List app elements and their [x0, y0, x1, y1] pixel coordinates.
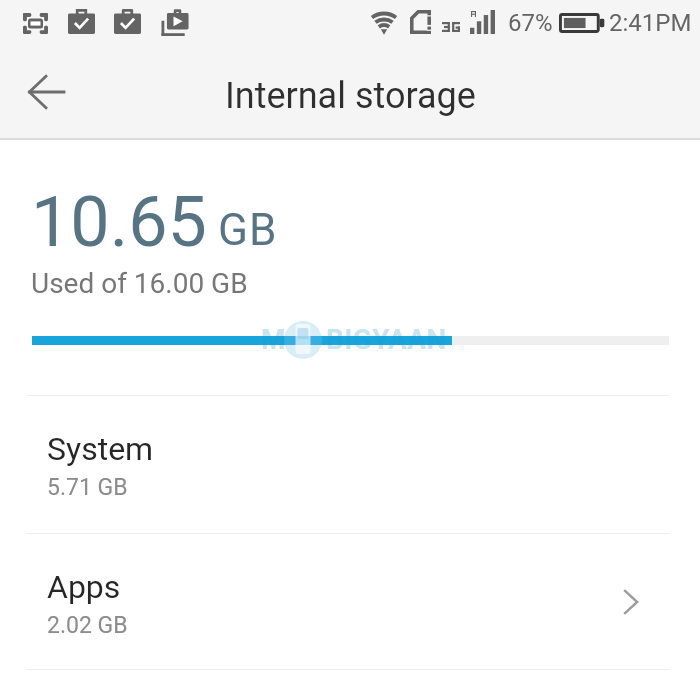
button[interactable]: Back [18, 64, 74, 120]
staticText: BIGYAAN [326, 323, 447, 356]
staticText: Used of 16.00 GB [31, 267, 248, 300]
other: Open Apps storage [623, 589, 639, 615]
staticText: System [47, 430, 154, 468]
staticText: 10.65 [31, 181, 207, 263]
button[interactable]: Apps [0, 534, 700, 668]
staticText: Internal storage [225, 75, 476, 117]
staticText: 5.71 GB [47, 474, 128, 501]
staticText: M [261, 323, 286, 356]
staticText: 67% [508, 9, 553, 37]
staticText: 2:41PM [609, 9, 692, 37]
staticText: 2.02 GB [47, 612, 128, 639]
button[interactable]: System [0, 396, 700, 533]
staticText: GB [218, 204, 278, 256]
staticText: Apps [47, 568, 121, 606]
